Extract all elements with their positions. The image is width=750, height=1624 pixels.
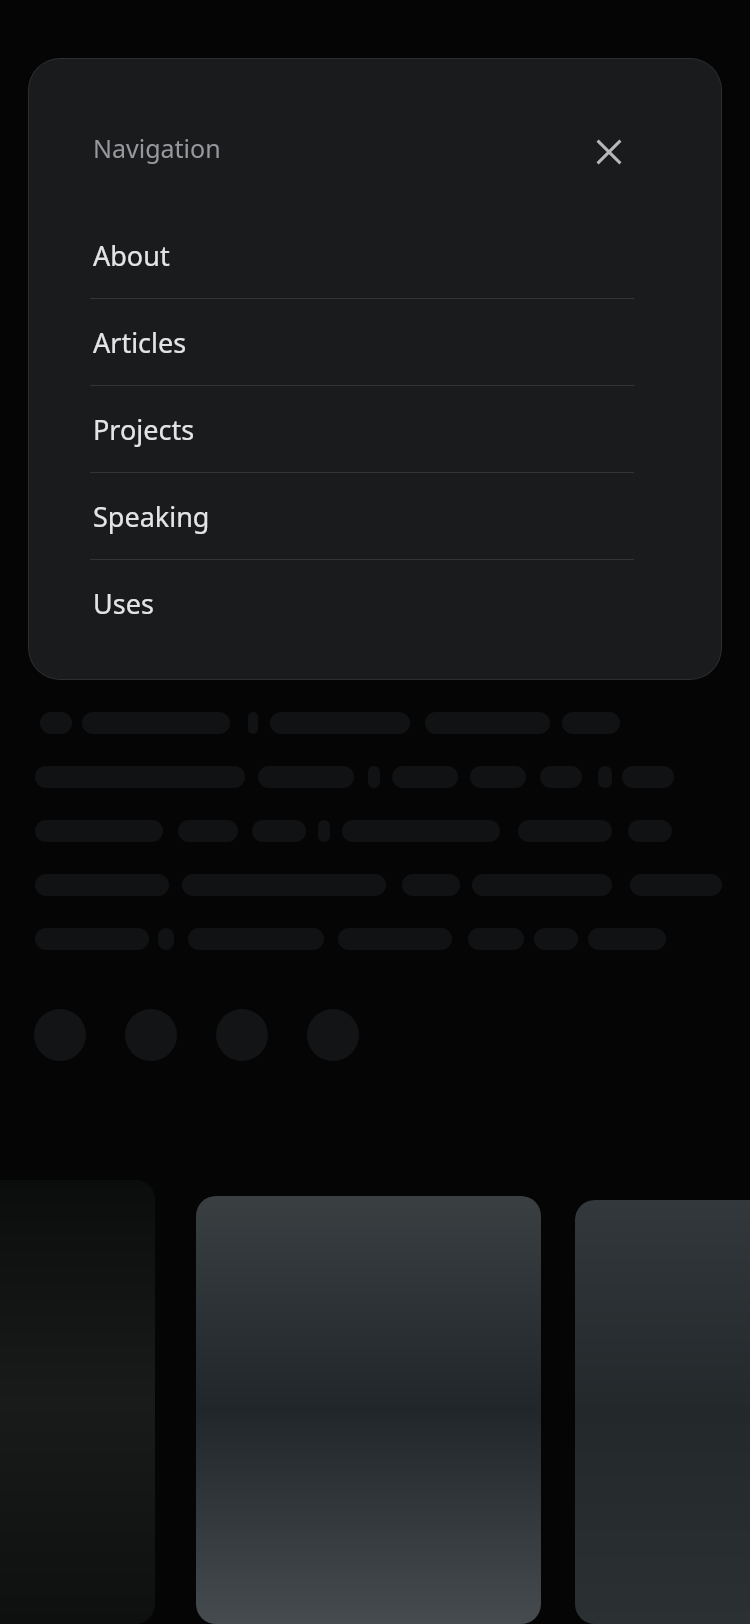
- button[interactable]: Uses: [28, 560, 722, 646]
- button[interactable]: Close navigation: [583, 126, 635, 178]
- button[interactable]: About: [28, 212, 722, 298]
- button[interactable]: Speaking: [28, 473, 722, 559]
- staticText: Articles: [93, 324, 187, 361]
- button[interactable]: Articles: [28, 299, 722, 385]
- staticText: Speaking: [93, 498, 210, 535]
- staticText: Uses: [93, 585, 154, 622]
- staticText: Projects: [93, 411, 195, 448]
- staticText: About: [93, 237, 170, 274]
- button[interactable]: Projects: [28, 386, 722, 472]
- staticText: Navigation: [93, 131, 221, 165]
